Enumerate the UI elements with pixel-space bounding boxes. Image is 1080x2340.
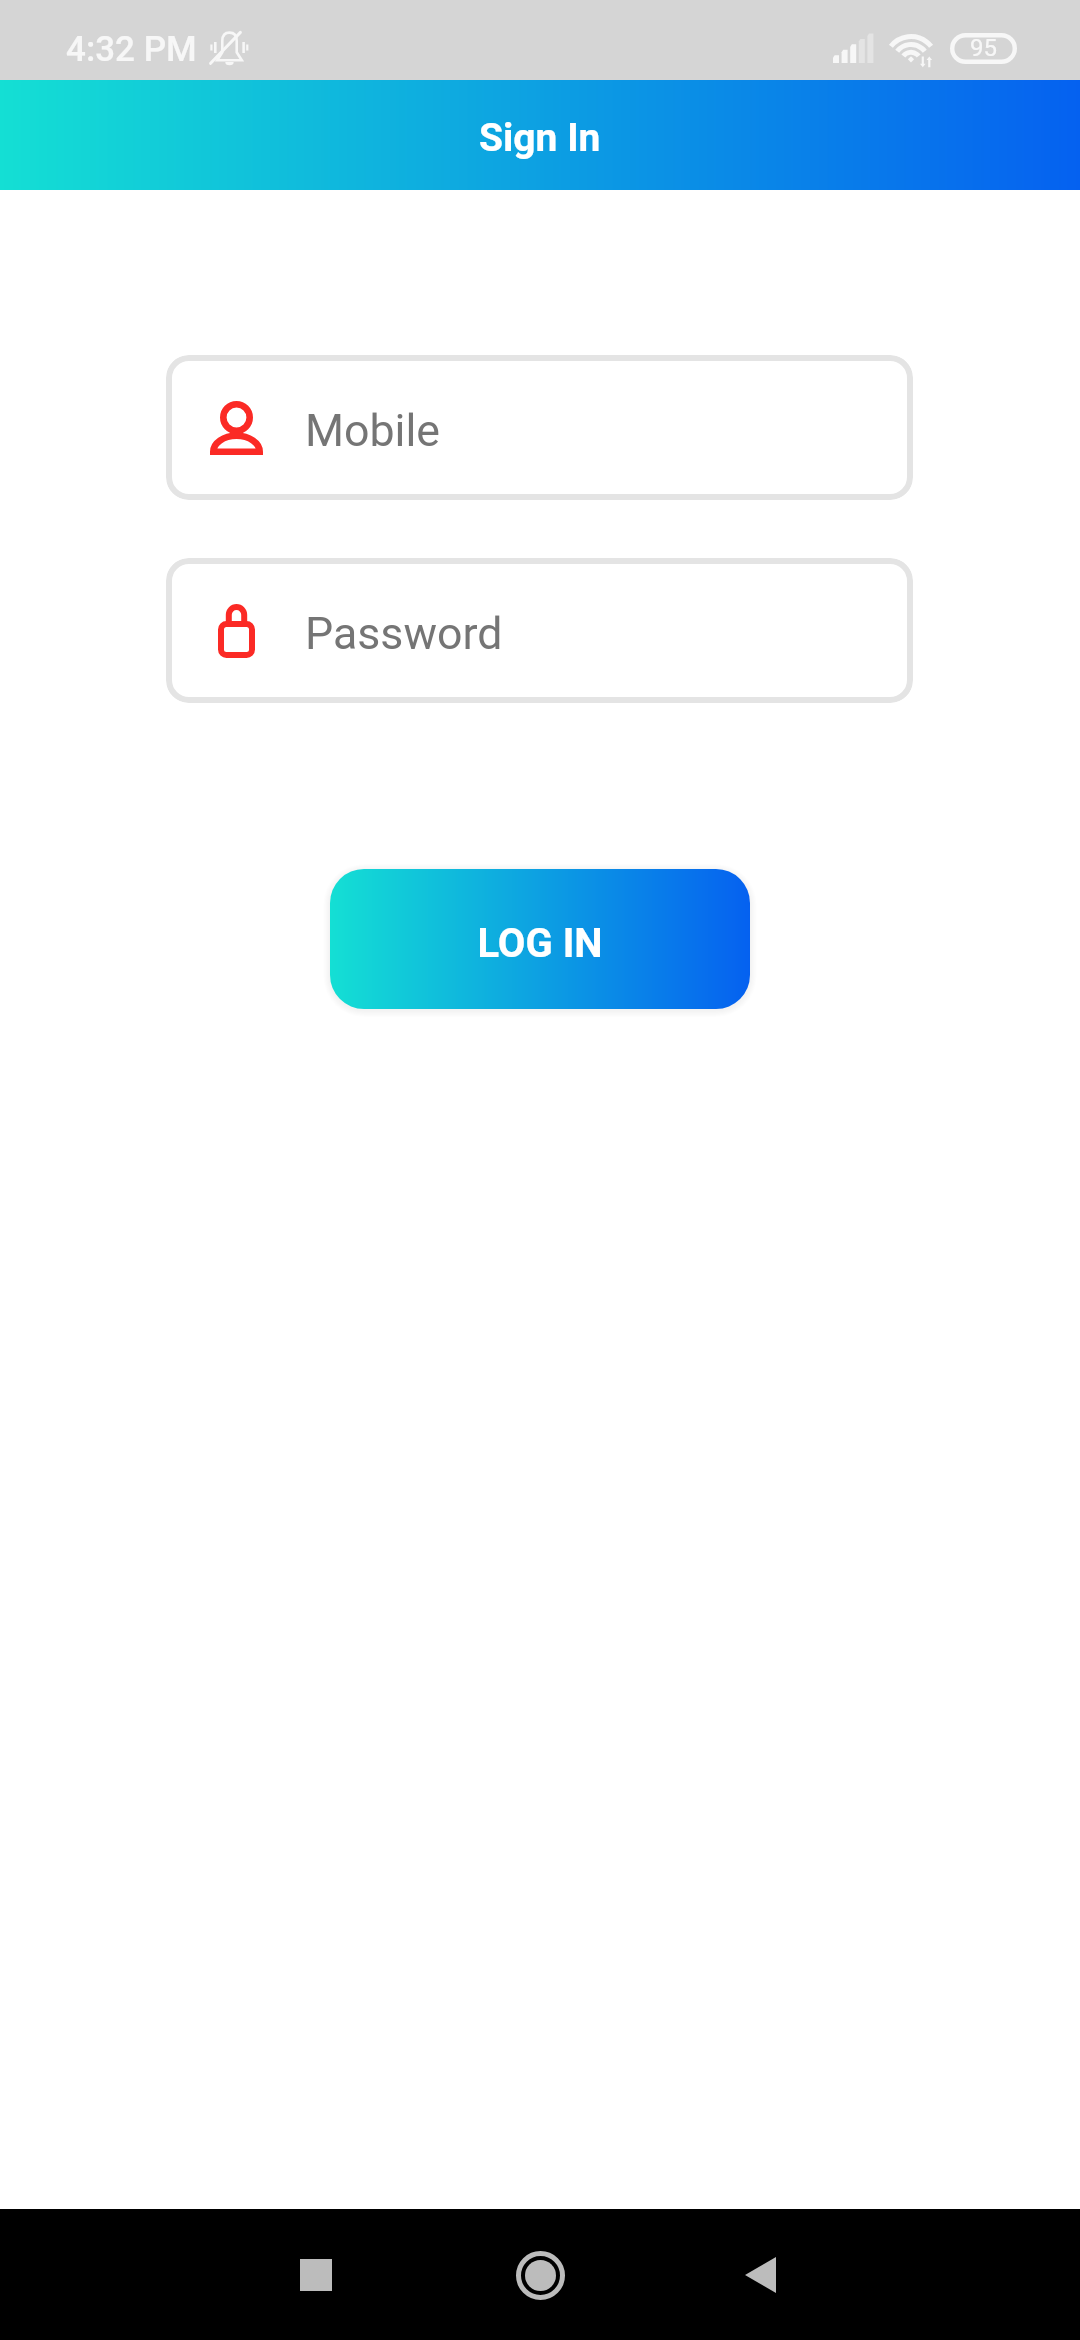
staticText: Sign In — [479, 115, 601, 161]
button[interactable]: Home — [480, 2215, 600, 2335]
button[interactable]: Mobile — [166, 355, 913, 500]
staticText: 4:32 PM — [66, 29, 197, 70]
staticText: Mobile — [305, 405, 441, 457]
staticText: Password — [305, 608, 503, 660]
button[interactable]: Back — [700, 2215, 820, 2335]
button[interactable]: Recents — [256, 2215, 376, 2335]
staticText: LOG IN — [477, 920, 603, 967]
button[interactable]: LOG IN — [330, 869, 750, 1009]
staticText: 95 — [970, 34, 997, 62]
button[interactable]: Password — [166, 558, 913, 703]
